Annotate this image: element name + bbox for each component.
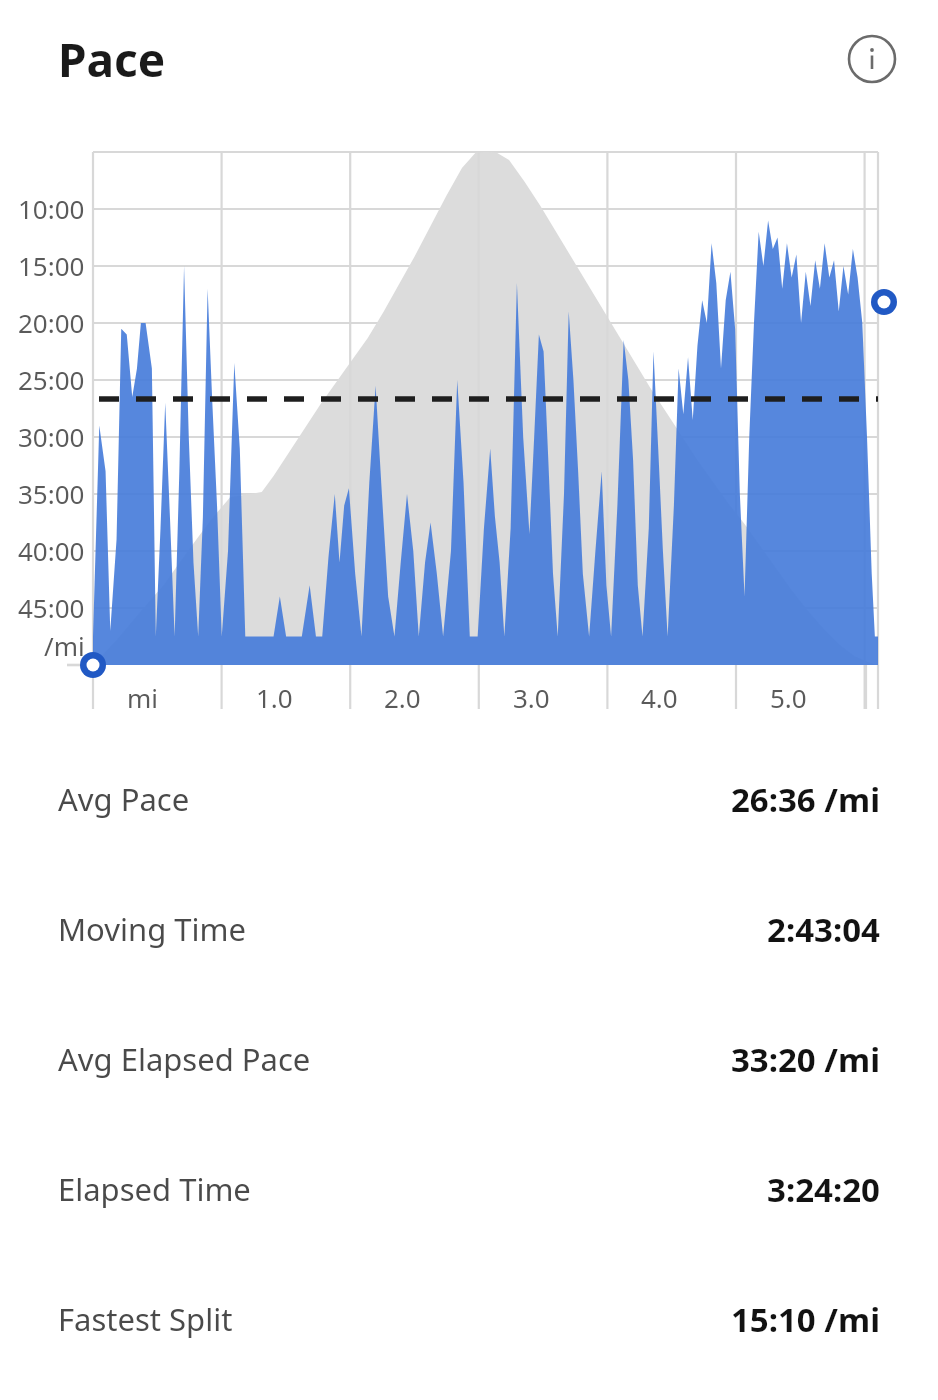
staticText: 35:00 <box>18 476 85 511</box>
staticText: mi <box>127 680 159 715</box>
staticText: /mi <box>44 628 85 663</box>
staticText: 30:00 <box>18 419 85 454</box>
staticText: Avg Pace <box>58 778 190 820</box>
button[interactable]: Avg Elapsed Pace <box>0 994 938 1124</box>
staticText: 40:00 <box>18 533 85 568</box>
staticText: 3.0 <box>513 680 550 715</box>
staticText: Elapsed Time <box>58 1168 251 1210</box>
staticText: 25:00 <box>18 362 85 397</box>
staticText: 45:00 <box>18 590 85 625</box>
button[interactable]: Fastest Split <box>0 1254 938 1384</box>
staticText: Pace <box>58 28 166 91</box>
button[interactable]: Moving Time <box>0 864 938 994</box>
button[interactable]: Elapsed Time <box>0 1124 938 1254</box>
button[interactable]: Avg Pace <box>0 734 938 864</box>
staticText: Moving Time <box>58 908 246 950</box>
staticText: 2:43:04 <box>767 907 880 952</box>
button[interactable]: Info <box>0 29 896 89</box>
staticText: 1.0 <box>256 680 293 715</box>
staticText: Avg Elapsed Pace <box>58 1038 311 1080</box>
staticText: 2.0 <box>384 680 421 715</box>
staticText: 3:24:20 <box>767 1167 880 1212</box>
staticText: 15:10 /mi <box>730 1297 880 1342</box>
staticText: 5.0 <box>770 680 807 715</box>
staticText: Fastest Split <box>58 1298 233 1340</box>
staticText: 10:00 <box>18 191 85 226</box>
staticText: 26:36 /mi <box>730 777 880 822</box>
staticText: 33:20 /mi <box>730 1037 880 1082</box>
staticText: 20:00 <box>18 305 85 340</box>
staticText: 4.0 <box>641 680 678 715</box>
staticText: 15:00 <box>18 248 85 283</box>
